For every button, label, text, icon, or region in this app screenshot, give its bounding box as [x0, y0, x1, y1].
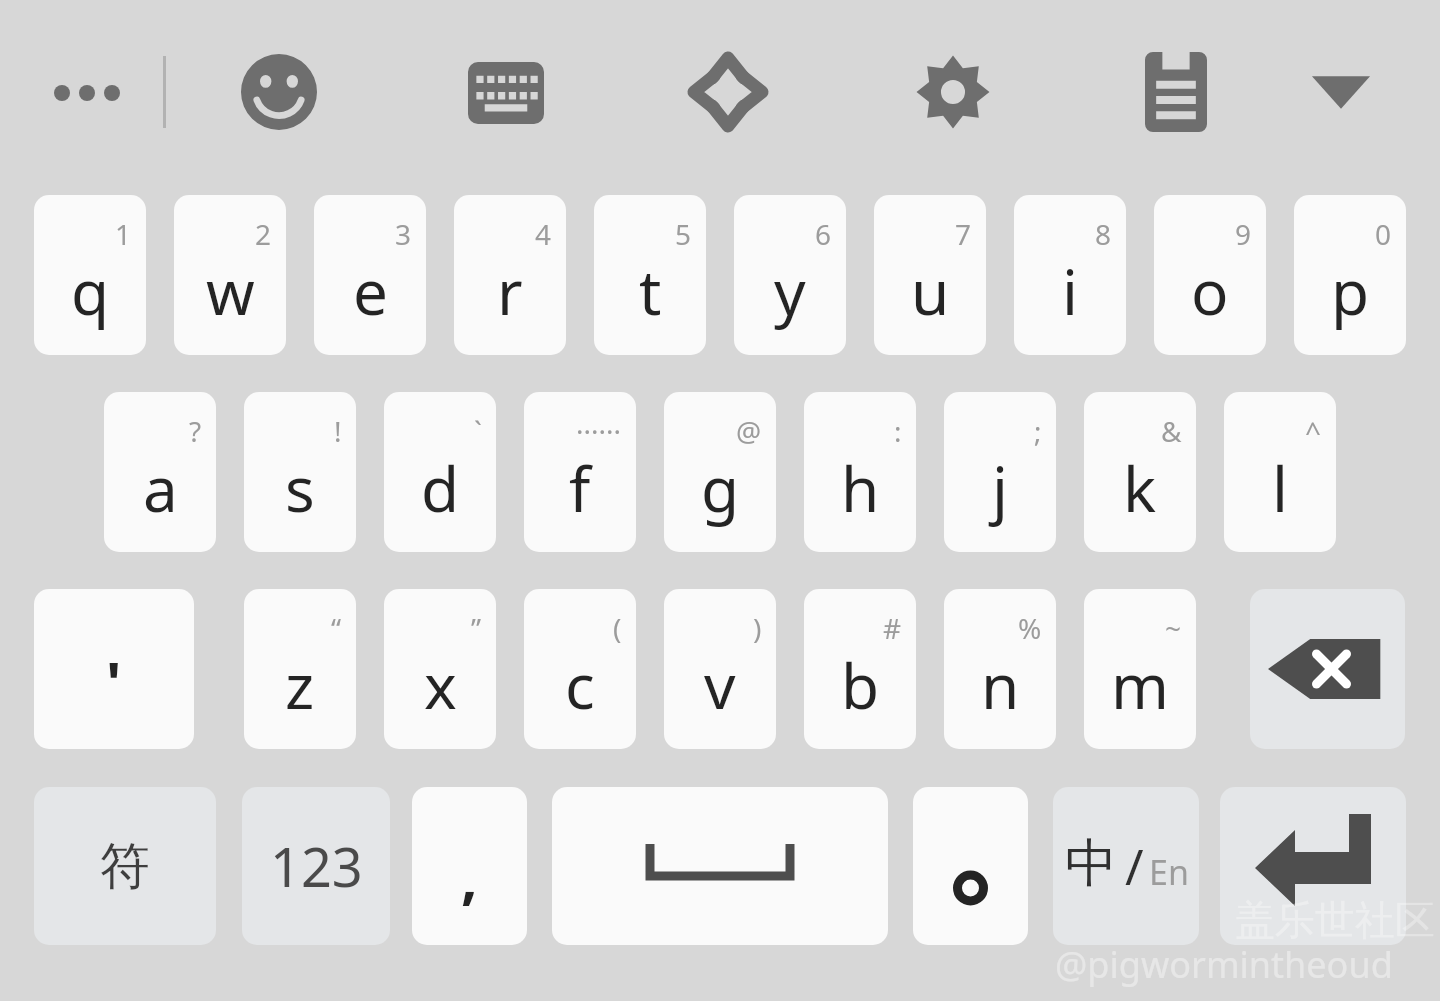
button[interactable]: Settings [915, 54, 991, 130]
staticText: y [774, 249, 806, 333]
button[interactable] [913, 787, 1028, 945]
button[interactable]: 0 [1294, 195, 1406, 355]
button[interactable]: ? [104, 392, 216, 552]
staticText: n [981, 643, 1020, 727]
staticText: # [883, 609, 902, 647]
staticText: 9 [1235, 215, 1252, 253]
staticText: ! [334, 412, 342, 450]
staticText: , [461, 837, 478, 916]
staticText: v [704, 643, 736, 727]
staticText: m [1111, 643, 1169, 727]
staticText: ” [471, 609, 482, 647]
staticText: @ [736, 412, 762, 450]
button[interactable]: Hide keyboard [1308, 64, 1374, 120]
staticText: En [1149, 849, 1189, 895]
button[interactable]: 2 [174, 195, 286, 355]
staticText: ` [474, 412, 482, 450]
staticText: ; [1034, 412, 1042, 450]
staticText: r [497, 249, 523, 333]
staticText: “ [331, 609, 342, 647]
button[interactable]: Space [552, 787, 888, 945]
staticText: k [1123, 446, 1157, 530]
staticText: p [1331, 249, 1370, 333]
staticText: z [285, 643, 315, 727]
staticText: g [701, 446, 740, 530]
staticText: c [565, 643, 595, 727]
staticText: ? [189, 412, 202, 450]
staticText: ~ [1165, 609, 1182, 647]
button[interactable]: 123 [242, 787, 390, 945]
button[interactable]: : [804, 392, 916, 552]
button[interactable]: ) [664, 589, 776, 749]
button[interactable]: ! [244, 392, 356, 552]
staticText: w [206, 249, 255, 333]
staticText: % [1018, 609, 1042, 647]
staticText: o [1191, 249, 1229, 333]
staticText: 6 [815, 215, 832, 253]
staticText: ' [106, 642, 122, 721]
staticText: 5 [675, 215, 692, 253]
button[interactable]: 5 [594, 195, 706, 355]
button[interactable]: ; [944, 392, 1056, 552]
staticText: 8 [1095, 215, 1112, 253]
staticText: q [71, 249, 110, 333]
staticText: 3 [395, 215, 412, 253]
button[interactable]: @ [664, 392, 776, 552]
staticText: x [424, 643, 457, 727]
staticText: 2 [255, 215, 272, 253]
staticText: d [421, 446, 460, 530]
button[interactable]: & [1084, 392, 1196, 552]
button[interactable]: 4 [454, 195, 566, 355]
staticText: t [639, 249, 662, 333]
staticText: @pigwormintheoud [1055, 940, 1393, 989]
staticText: e [353, 249, 388, 333]
staticText: ······ [576, 412, 622, 450]
button[interactable]: 6 [734, 195, 846, 355]
staticText: l [1272, 446, 1288, 530]
staticText: i [1062, 249, 1078, 333]
button[interactable]: Enter [1220, 787, 1406, 945]
staticText: & [1161, 412, 1182, 450]
staticText: 1 [115, 215, 132, 253]
button[interactable]: More options [52, 72, 122, 114]
button[interactable]: “ [244, 589, 356, 749]
button[interactable]: ' [34, 589, 194, 749]
button[interactable]: ” [384, 589, 496, 749]
button[interactable]: 符 [34, 787, 216, 945]
button[interactable]: 3 [314, 195, 426, 355]
button[interactable]: Keyboard layout [468, 62, 544, 124]
button[interactable]: ^ [1224, 392, 1336, 552]
button[interactable]: 9 [1154, 195, 1266, 355]
button[interactable]: ~ [1084, 589, 1196, 749]
staticText: ( [613, 609, 622, 647]
staticText: a [143, 446, 178, 530]
button[interactable]: 7 [874, 195, 986, 355]
button[interactable]: ` [384, 392, 496, 552]
button[interactable]: # [804, 589, 916, 749]
staticText: 符 [100, 835, 150, 898]
staticText: ) [753, 609, 762, 647]
staticText: ^ [1305, 412, 1322, 450]
staticText: 0 [1375, 215, 1392, 253]
staticText: s [285, 446, 315, 530]
button[interactable]: Clipboard [1145, 52, 1207, 132]
button[interactable]: Backspace [1250, 589, 1405, 749]
button[interactable]: , [412, 787, 527, 945]
button[interactable]: ( [524, 589, 636, 749]
staticText: f [569, 446, 591, 530]
button[interactable]: ······ [524, 392, 636, 552]
button[interactable]: % [944, 589, 1056, 749]
button[interactable]: 1 [34, 195, 146, 355]
staticText: : [894, 412, 902, 450]
staticText: 123 [270, 829, 363, 903]
staticText: 盖乐世社区 [1235, 895, 1435, 945]
staticText: 7 [955, 215, 972, 253]
staticText: 中 [1065, 831, 1117, 897]
button[interactable]: Emoji [241, 54, 317, 130]
button[interactable]: 中 [1053, 787, 1199, 945]
staticText: / [1125, 832, 1144, 900]
staticText: h [841, 446, 880, 530]
button[interactable]: 8 [1014, 195, 1126, 355]
button[interactable]: Move cursor [688, 52, 768, 132]
staticText: j [992, 446, 1008, 530]
